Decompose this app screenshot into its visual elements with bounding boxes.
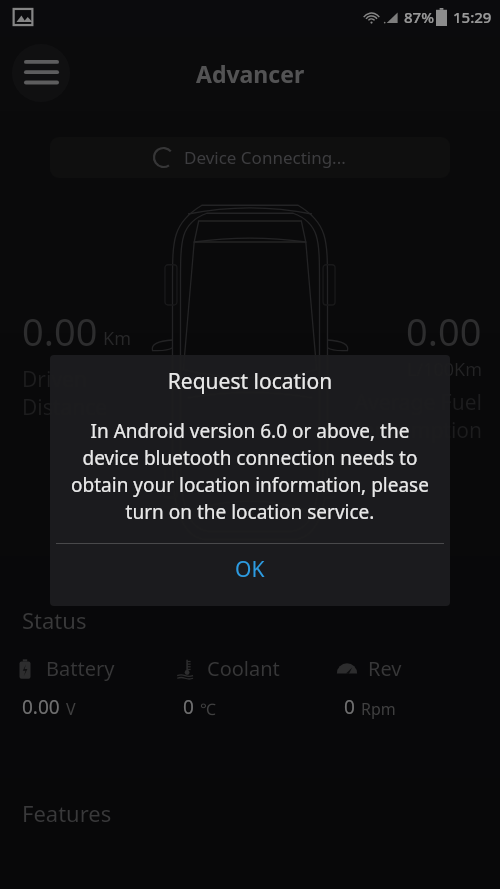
staticText: In Android version 6.0 or above, the dev…: [66, 418, 434, 525]
staticText: 0: [183, 694, 194, 720]
staticText: ℃: [200, 698, 216, 720]
staticText: 0: [344, 694, 355, 720]
button[interactable]: OK: [50, 544, 450, 606]
staticText: Rpm: [361, 698, 396, 720]
staticText: Battery: [46, 655, 115, 682]
staticText: Device Connecting...: [184, 146, 346, 169]
button[interactable]: Battery: [14, 655, 164, 720]
staticText: Features: [22, 798, 112, 828]
staticText: 0.00: [22, 305, 98, 357]
staticText: Average Fuel Consumption: [348, 388, 482, 444]
staticText: Km: [103, 326, 131, 351]
button[interactable]: Open navigation menu: [12, 44, 70, 102]
staticText: Request location: [50, 367, 450, 396]
staticText: V: [66, 698, 76, 720]
button[interactable]: Coolant: [175, 655, 325, 720]
staticText: Coolant: [207, 655, 280, 682]
staticText: 87%: [404, 7, 434, 27]
staticText: Advancer: [196, 58, 305, 89]
staticText: L/100Km: [407, 357, 482, 382]
staticText: Status: [22, 605, 87, 635]
staticText: 0.00: [22, 694, 60, 720]
button[interactable]: Rev: [336, 655, 486, 720]
button[interactable]: Device Connecting...: [50, 137, 450, 178]
staticText: Driven Distance: [22, 365, 108, 421]
staticText: OK: [235, 555, 265, 584]
staticText: 0.00: [406, 305, 482, 357]
staticText: Rev: [368, 655, 402, 682]
staticText: 15:29: [453, 7, 492, 27]
